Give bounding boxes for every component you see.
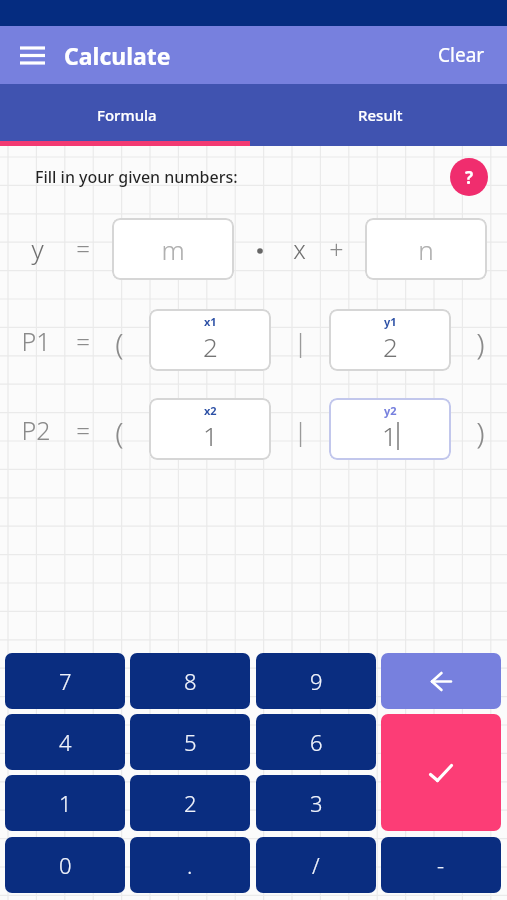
staticText: 1 bbox=[382, 418, 397, 453]
button[interactable] bbox=[381, 653, 501, 709]
staticText: n bbox=[418, 232, 434, 267]
staticText: Clear bbox=[438, 42, 485, 68]
button[interactable]: 8 bbox=[130, 653, 250, 709]
button[interactable]: y1 bbox=[329, 309, 451, 371]
button[interactable] bbox=[381, 714, 501, 831]
button[interactable]: x1 bbox=[149, 309, 271, 371]
button[interactable]: 0 bbox=[5, 837, 125, 893]
staticText: = bbox=[76, 325, 90, 358]
staticText: 8 bbox=[184, 666, 197, 696]
staticText: 1 bbox=[59, 788, 72, 818]
staticText: ) bbox=[476, 323, 485, 364]
staticText: = bbox=[76, 414, 90, 447]
staticText: 2 bbox=[203, 329, 218, 364]
staticText: 5 bbox=[184, 727, 197, 757]
staticText: Fill in your given numbers: bbox=[35, 166, 238, 188]
staticText: - bbox=[437, 850, 445, 880]
staticText: Result bbox=[358, 105, 403, 125]
staticText: ( bbox=[115, 412, 124, 453]
staticText: Calculate bbox=[64, 40, 171, 71]
staticText: m bbox=[161, 232, 185, 267]
staticText: y bbox=[31, 231, 44, 266]
button[interactable]: m bbox=[112, 218, 234, 280]
staticText: x2 bbox=[204, 403, 217, 418]
button[interactable]: x2 bbox=[149, 398, 271, 460]
staticText: 2 bbox=[383, 329, 398, 364]
staticText: 0 bbox=[59, 850, 72, 880]
staticText: 4 bbox=[59, 727, 72, 757]
staticText: ( bbox=[115, 323, 124, 364]
staticText: ? bbox=[465, 166, 474, 189]
staticText: / bbox=[312, 850, 320, 880]
staticText: Formula bbox=[97, 105, 157, 125]
button[interactable]: 9 bbox=[256, 653, 376, 709]
button[interactable]: - bbox=[381, 837, 501, 893]
staticText: | bbox=[293, 413, 308, 448]
button[interactable]: . bbox=[130, 837, 250, 893]
button[interactable]: Formula bbox=[0, 84, 253, 146]
staticText: 3 bbox=[310, 788, 323, 818]
staticText: y2 bbox=[384, 403, 397, 418]
button[interactable]: n bbox=[365, 218, 487, 280]
staticText: 2 bbox=[184, 788, 197, 818]
button[interactable]: 3 bbox=[256, 775, 376, 831]
staticText: 1 bbox=[203, 418, 218, 453]
staticText: = bbox=[76, 232, 90, 265]
staticText: P1 bbox=[21, 324, 51, 358]
button[interactable] bbox=[20, 46, 46, 65]
staticText: + bbox=[329, 232, 344, 266]
staticText: P2 bbox=[21, 413, 51, 447]
staticText: x bbox=[293, 232, 306, 266]
staticText: 6 bbox=[310, 727, 323, 757]
staticText: y1 bbox=[384, 314, 397, 329]
staticText: x1 bbox=[204, 314, 217, 329]
button[interactable]: 5 bbox=[130, 714, 250, 770]
button[interactable]: / bbox=[256, 837, 376, 893]
button[interactable]: 7 bbox=[5, 653, 125, 709]
staticText: 7 bbox=[59, 666, 72, 696]
staticText: 9 bbox=[310, 666, 323, 696]
button[interactable]: ? bbox=[450, 158, 488, 196]
button[interactable]: 2 bbox=[130, 775, 250, 831]
staticText: ) bbox=[476, 412, 485, 453]
staticText: . bbox=[187, 850, 193, 880]
staticText: | bbox=[293, 324, 308, 359]
button[interactable]: 6 bbox=[256, 714, 376, 770]
button[interactable]: 1 bbox=[5, 775, 125, 831]
button[interactable]: 4 bbox=[5, 714, 125, 770]
button[interactable]: y2 bbox=[329, 398, 451, 460]
button[interactable]: Clear bbox=[438, 42, 485, 68]
button[interactable]: Result bbox=[253, 84, 507, 146]
